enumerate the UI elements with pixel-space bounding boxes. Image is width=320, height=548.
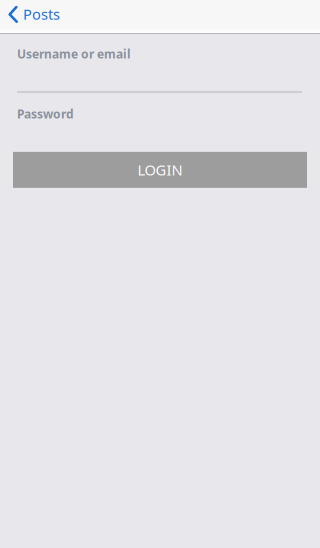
staticText: Posts [23, 4, 60, 24]
button[interactable]: LOGIN [13, 152, 307, 188]
button[interactable]: Password [0, 93, 302, 146]
button[interactable]: Posts [0, 0, 76, 28]
staticText: Password [17, 106, 74, 122]
button[interactable]: Username or email [0, 34, 302, 93]
staticText: Username or email [17, 46, 131, 62]
staticText: LOGIN [137, 160, 182, 180]
